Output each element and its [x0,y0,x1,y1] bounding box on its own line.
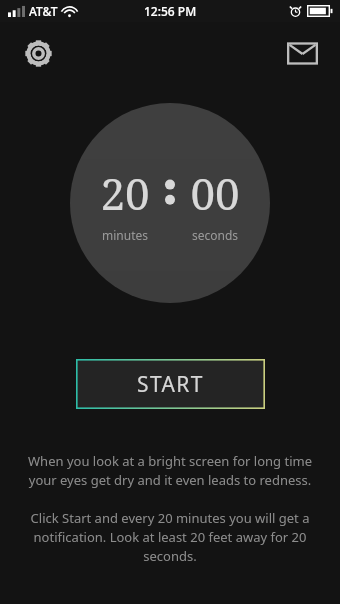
staticText: When you look at a bright screen for lon… [22,452,318,489]
button[interactable]: 20 [70,103,270,303]
button[interactable]: START [76,359,265,409]
staticText: 12:56 PM [144,3,197,19]
staticText: Click Start and every 20 minutes you wil… [28,509,312,565]
button[interactable]: Contact us [280,31,324,75]
staticText: 00 [181,163,249,223]
staticText: START [137,370,204,399]
button[interactable]: Settings [16,31,60,75]
staticText: minutes [91,227,159,243]
staticText: seconds [181,227,249,243]
staticText: AT&T [29,3,58,19]
staticText: 20 [91,163,159,223]
